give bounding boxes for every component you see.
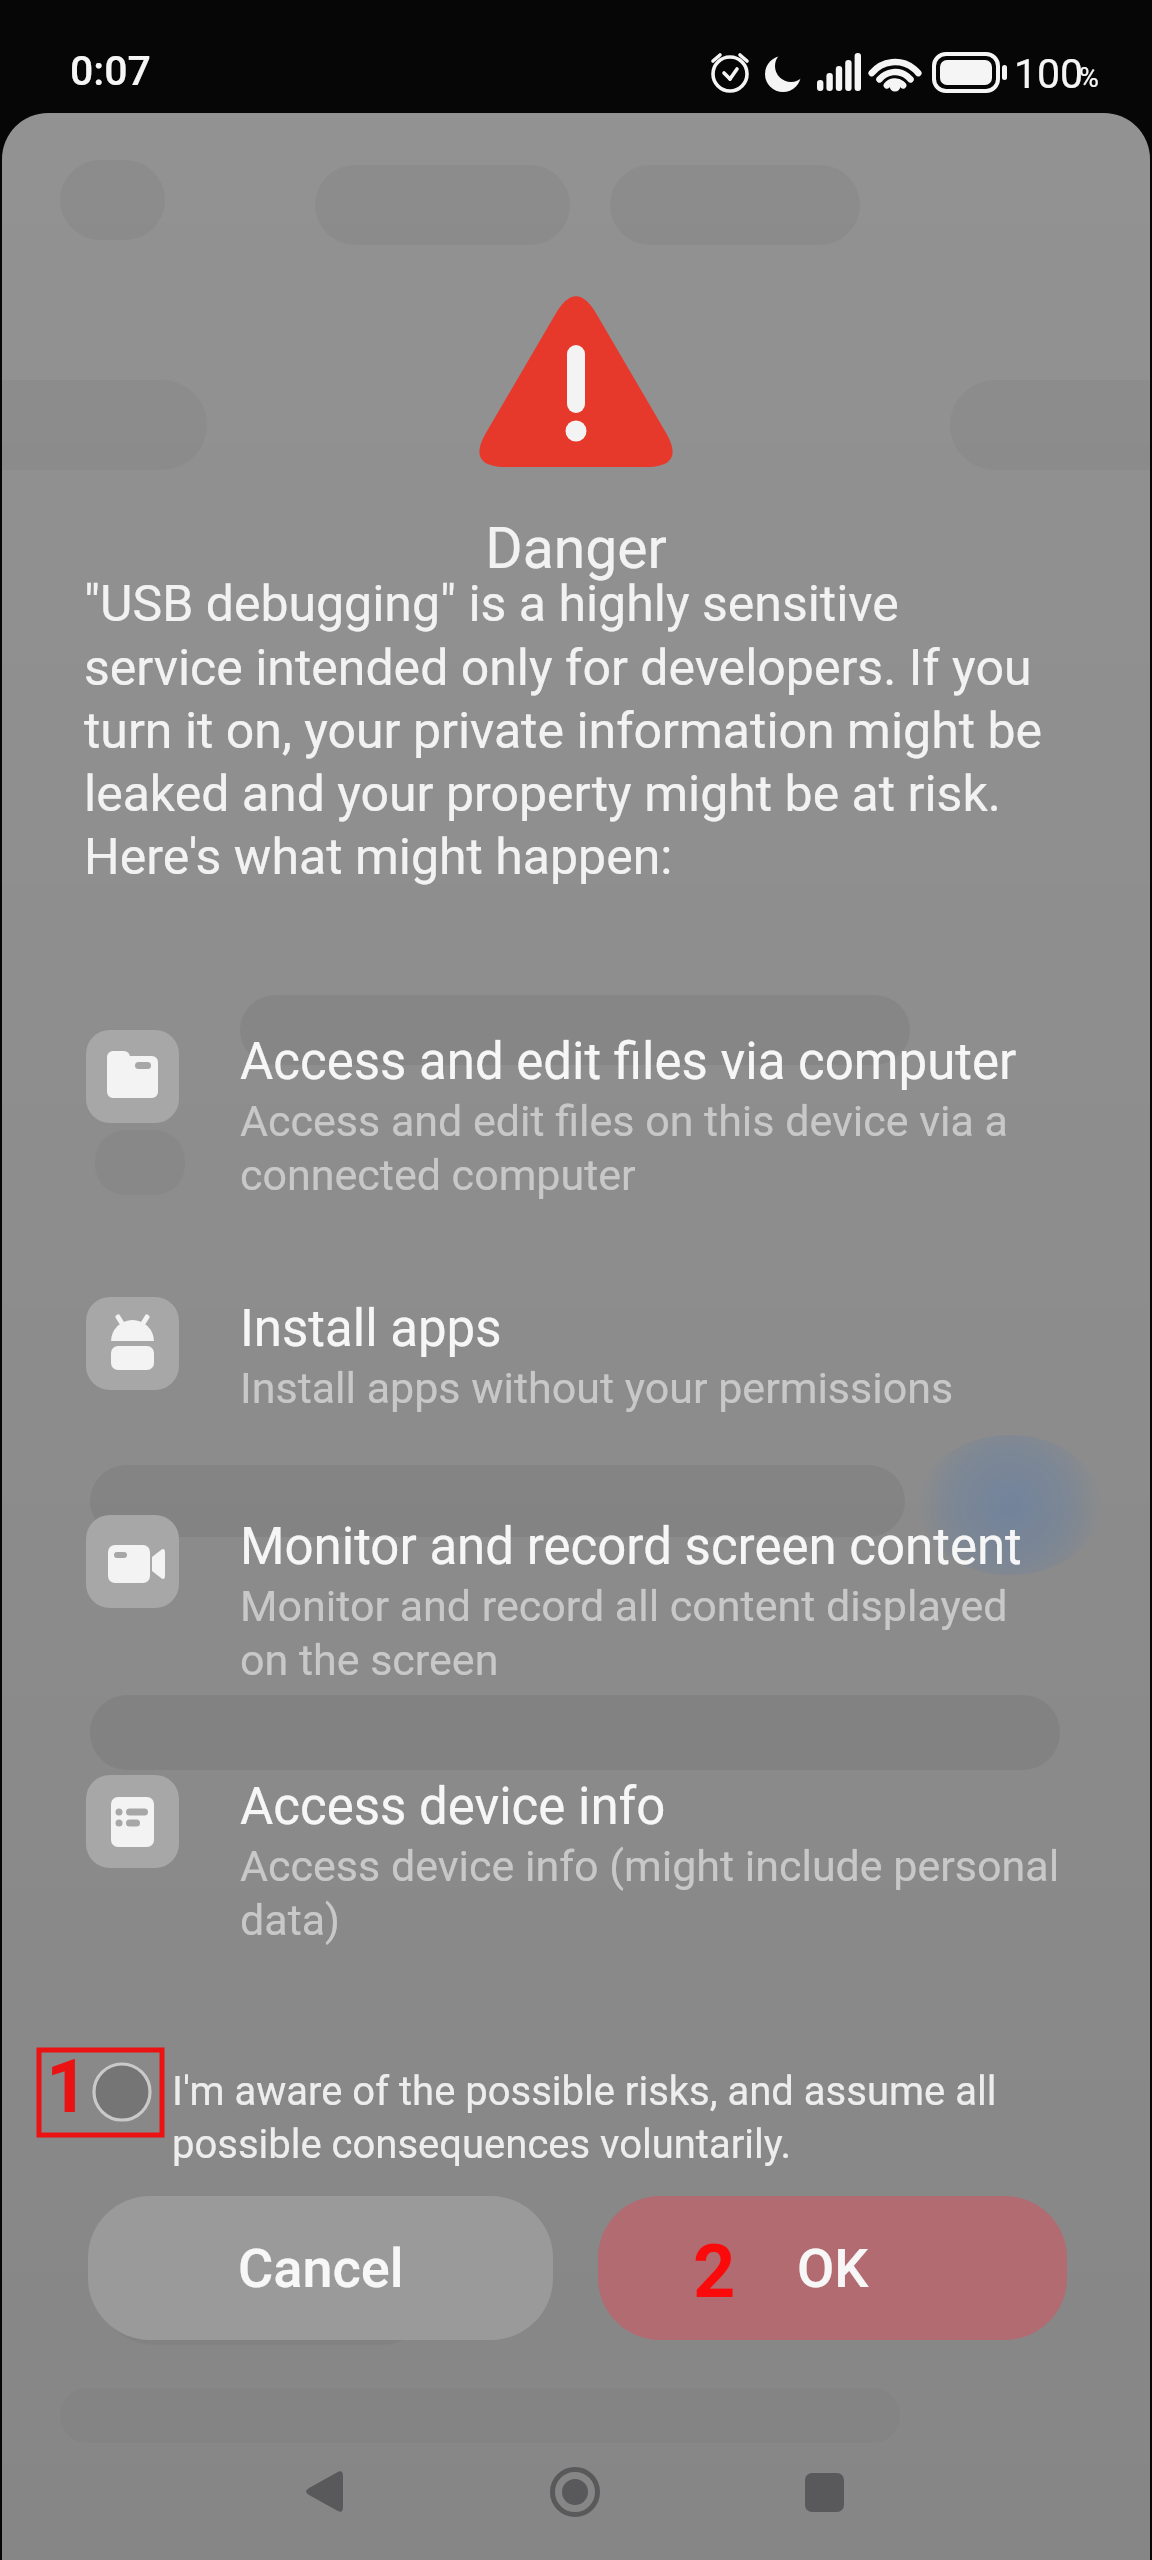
staticText: 0:07	[70, 47, 151, 95]
button[interactable]	[84, 2050, 1084, 2180]
staticText: Access device info (might include person…	[240, 1841, 1060, 1945]
button[interactable]	[780, 2455, 870, 2530]
button[interactable]: Cancel	[88, 2196, 553, 2340]
staticText: Monitor and record all content displayed…	[240, 1581, 1008, 1685]
button[interactable]: OK	[598, 2196, 1067, 2340]
staticText: Access and edit files on this device via…	[240, 1096, 1008, 1200]
staticText: OK	[797, 2237, 869, 2300]
button[interactable]	[530, 2455, 620, 2530]
staticText: "USB debugging" is a highly sensitive se…	[84, 575, 1043, 886]
staticText: 100	[1014, 50, 1084, 98]
staticText: Monitor and record screen content	[240, 1517, 1022, 1577]
staticText: Danger	[485, 515, 667, 582]
staticText: Access and edit files via computer	[240, 1032, 1017, 1092]
staticText: I'm aware of the possible risks, and ass…	[172, 2068, 997, 2168]
button[interactable]	[280, 2455, 370, 2530]
staticText: 1	[46, 2043, 89, 2130]
staticText: Install apps without your permissions	[240, 1363, 954, 1413]
staticText: Install apps	[240, 1299, 502, 1359]
staticText: 2	[693, 2228, 736, 2315]
staticText: Access device info	[240, 1777, 666, 1837]
staticText: %	[1079, 62, 1099, 94]
staticText: Cancel	[238, 2237, 404, 2300]
